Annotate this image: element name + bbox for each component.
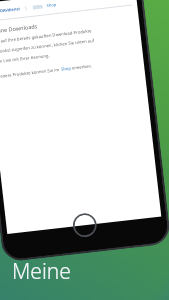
staticText: Meine Downloads [0,22,38,34]
button[interactable]: Logo [0,0,131,17]
staticText: den Link mit Ihrer Kennung. [0,53,51,65]
button[interactable]: Shop [61,66,71,73]
button[interactable]: Shop [46,2,57,8]
button[interactable]: Phone showing the download page [0,0,169,263]
button[interactable]: Menu [33,4,43,10]
staticText: Weitere Produkte können Sie im [0,67,61,80]
staticText: erwerben. [71,63,93,72]
staticText: Meine Shopkäufe [12,257,169,286]
staticText: (eBooks) zugreifen zu können, klicken Si… [0,38,95,55]
staticText: | [25,5,28,10]
button[interactable]: Home [71,212,98,238]
staticText: Um auf Ihre bereits gekauften Download-P… [0,28,92,45]
staticText: DAVdienst [0,6,20,13]
button[interactable]: Meine Shopkäufe [12,257,169,286]
